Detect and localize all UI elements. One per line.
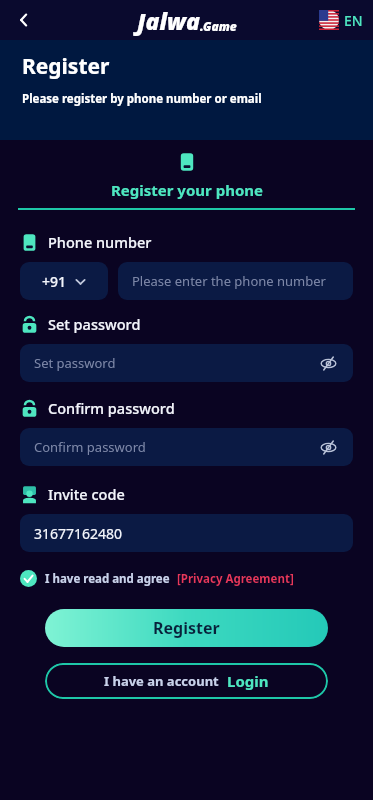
button[interactable]: Register (45, 609, 328, 647)
button[interactable]: EN (319, 10, 363, 30)
staticText: Confirm password (48, 398, 175, 418)
button[interactable]: Register your phone (0, 152, 373, 210)
staticText: 31677162480 (34, 524, 123, 543)
staticText: +91 (42, 272, 67, 291)
staticText: Register (22, 52, 110, 81)
staticText: Please register by phone number or email (22, 91, 262, 107)
button[interactable]: I have read and agree (20, 570, 294, 587)
button[interactable]: Set password (20, 344, 353, 382)
button[interactable]: Show password (317, 436, 339, 458)
staticText: EN (344, 11, 363, 30)
staticText: Register your phone (111, 180, 263, 200)
staticText: Set password (48, 314, 141, 334)
staticText: .Game (200, 18, 237, 34)
staticText: I have an account (104, 672, 219, 690)
staticText: [Privacy Agreement] (177, 571, 294, 587)
staticText: Confirm password (34, 438, 146, 456)
button[interactable]: I have an account (45, 663, 328, 699)
button[interactable]: Confirm password (20, 428, 353, 466)
staticText: Jalwa (137, 5, 200, 36)
staticText: Set password (34, 354, 116, 372)
staticText: I have read and agree (45, 571, 170, 587)
staticText: Please enter the phone number (132, 272, 326, 290)
staticText: Register (153, 617, 220, 639)
button[interactable]: Back (6, 2, 42, 38)
button[interactable]: 31677162480 (20, 514, 353, 552)
button[interactable]: Show password (317, 352, 339, 374)
staticText: Invite code (48, 484, 125, 504)
button[interactable]: +91 (20, 262, 108, 300)
staticText: Phone number (48, 232, 152, 252)
button[interactable]: Please enter the phone number (118, 262, 353, 300)
staticText: Login (227, 671, 269, 691)
